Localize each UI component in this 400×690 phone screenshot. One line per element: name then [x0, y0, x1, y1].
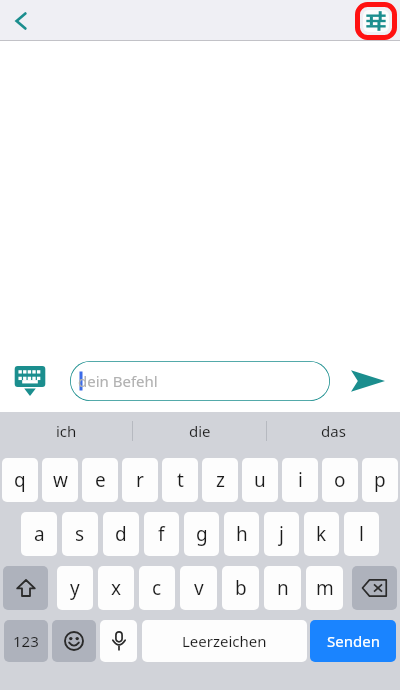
staticText: j	[279, 521, 284, 547]
button[interactable]: n	[264, 566, 301, 610]
staticText: dein Befehl	[78, 371, 158, 391]
button[interactable]: a	[21, 512, 57, 556]
staticText: s	[75, 521, 85, 547]
button[interactable]: Leerzeichen	[142, 620, 307, 662]
staticText: das	[321, 421, 346, 441]
button[interactable]: Emoji	[52, 620, 96, 662]
button[interactable]: o	[322, 458, 358, 502]
button[interactable]: Back	[0, 0, 42, 41]
button[interactable]: das	[267, 412, 400, 450]
staticText: u	[254, 467, 266, 493]
staticText: d	[115, 521, 127, 547]
staticText: q	[14, 467, 26, 493]
staticText: g	[196, 521, 208, 547]
button[interactable]: v	[180, 566, 217, 610]
button[interactable]: Shift	[3, 566, 48, 610]
staticText: z	[216, 467, 225, 493]
button[interactable]: Backspace	[352, 566, 397, 610]
staticText: ich	[56, 421, 77, 441]
button[interactable]: g	[184, 512, 219, 556]
button[interactable]: c	[139, 566, 175, 610]
button[interactable]: dein Befehl	[70, 361, 330, 401]
button[interactable]: l	[344, 512, 379, 556]
button[interactable]: y	[57, 566, 93, 610]
button[interactable]: p	[362, 458, 398, 502]
staticText: a	[34, 521, 45, 547]
staticText: o	[334, 467, 346, 493]
button[interactable]: b	[222, 566, 259, 610]
staticText: h	[236, 521, 248, 547]
button[interactable]: x	[98, 566, 134, 610]
staticText: f	[158, 521, 165, 547]
staticText: l	[359, 521, 364, 547]
staticText: 123	[13, 631, 39, 651]
button[interactable]: Senden	[310, 620, 396, 662]
button[interactable]: Hide keyboard	[4, 355, 56, 407]
button[interactable]: d	[103, 512, 139, 556]
button[interactable]: q	[2, 458, 38, 502]
button[interactable]: f	[144, 512, 179, 556]
staticText: r	[136, 467, 144, 493]
staticText: c	[152, 575, 162, 601]
staticText: die	[189, 421, 211, 441]
staticText: x	[111, 575, 122, 601]
button[interactable]: die	[133, 412, 266, 450]
button[interactable]: j	[264, 512, 299, 556]
button[interactable]: Send	[342, 355, 394, 407]
button[interactable]: t	[162, 458, 198, 502]
button[interactable]: z	[202, 458, 238, 502]
staticText: y	[70, 575, 80, 601]
staticText: w	[53, 467, 68, 493]
button[interactable]: 123	[4, 620, 48, 662]
staticText: m	[316, 575, 334, 601]
staticText: n	[277, 575, 289, 601]
button[interactable]: e	[82, 458, 118, 502]
button[interactable]: u	[242, 458, 278, 502]
button[interactable]: r	[122, 458, 158, 502]
button[interactable]: h	[224, 512, 259, 556]
staticText: b	[235, 575, 247, 601]
staticText: p	[374, 467, 386, 493]
staticText: Senden	[327, 631, 380, 651]
staticText: Leerzeichen	[182, 631, 267, 651]
button[interactable]: w	[42, 458, 78, 502]
staticText: k	[316, 521, 327, 547]
staticText: i	[298, 467, 303, 493]
button[interactable]: ich	[0, 412, 132, 450]
staticText: v	[194, 575, 204, 601]
button[interactable]: Voice input	[100, 620, 137, 662]
button[interactable]: m	[306, 566, 343, 610]
button[interactable]: Settings	[355, 2, 397, 40]
button[interactable]: i	[282, 458, 318, 502]
button[interactable]: s	[62, 512, 98, 556]
button[interactable]: k	[304, 512, 339, 556]
staticText: e	[95, 467, 106, 493]
staticText: t	[177, 467, 184, 493]
